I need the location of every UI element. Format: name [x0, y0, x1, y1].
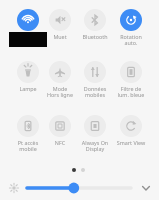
button[interactable]: Données mobiles	[76, 61, 114, 99]
button[interactable]: Rotation automatique	[112, 9, 150, 47]
button[interactable]: Luminosité	[0, 175, 159, 200]
staticText: Always On Display	[76, 139, 114, 153]
staticText: Données mobiles	[76, 85, 114, 99]
staticText: Mode Hors ligne	[41, 85, 79, 99]
staticText: Rotation auto.	[112, 33, 150, 47]
staticText: Bluetooth	[76, 33, 114, 40]
button[interactable]: Muet	[41, 9, 79, 40]
button[interactable]: Smart View	[112, 115, 150, 146]
button[interactable]: Always On Display	[76, 115, 114, 153]
button[interactable]: Filtre de lumière bleue	[112, 61, 150, 99]
button[interactable]: Mode hors ligne	[41, 61, 79, 99]
button[interactable]: Bluetooth	[76, 9, 114, 40]
button[interactable]: Point d'accès mobile	[9, 115, 47, 153]
button[interactable]: Lampe	[9, 61, 47, 92]
staticText: Muet	[41, 33, 79, 40]
staticText: Lampe	[9, 85, 47, 92]
button[interactable]: Wi-Fi	[9, 9, 47, 31]
staticText: NFC	[41, 139, 79, 146]
staticText: Smart View	[112, 139, 150, 146]
button[interactable]: NFC	[41, 115, 79, 146]
staticText: Pt accès mobile	[9, 139, 47, 153]
staticText: Filtre de lum. bleue	[112, 85, 150, 99]
